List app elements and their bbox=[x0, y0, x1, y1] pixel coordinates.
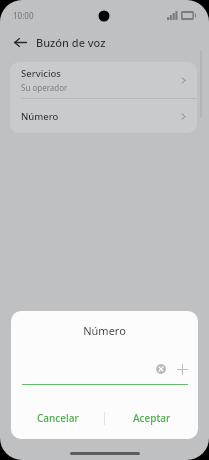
staticText: Número bbox=[21, 110, 59, 123]
staticText: Su operador bbox=[21, 82, 68, 93]
button[interactable]: Clear text bbox=[153, 361, 169, 377]
button[interactable]: Número bbox=[10, 99, 197, 133]
staticText: 10:00 bbox=[13, 10, 34, 21]
button[interactable]: Back bbox=[9, 31, 31, 53]
staticText: Servicios bbox=[21, 67, 61, 80]
staticText: Número bbox=[11, 323, 198, 338]
button[interactable]: Servicios bbox=[10, 62, 197, 98]
staticText: Buzón de voz bbox=[36, 35, 106, 50]
button[interactable]: Add contact bbox=[174, 361, 190, 377]
button[interactable]: Aceptar bbox=[105, 403, 198, 433]
button[interactable]: Cancelar bbox=[11, 403, 104, 433]
staticText: Cancelar bbox=[37, 411, 79, 425]
staticText: Aceptar bbox=[133, 411, 171, 425]
